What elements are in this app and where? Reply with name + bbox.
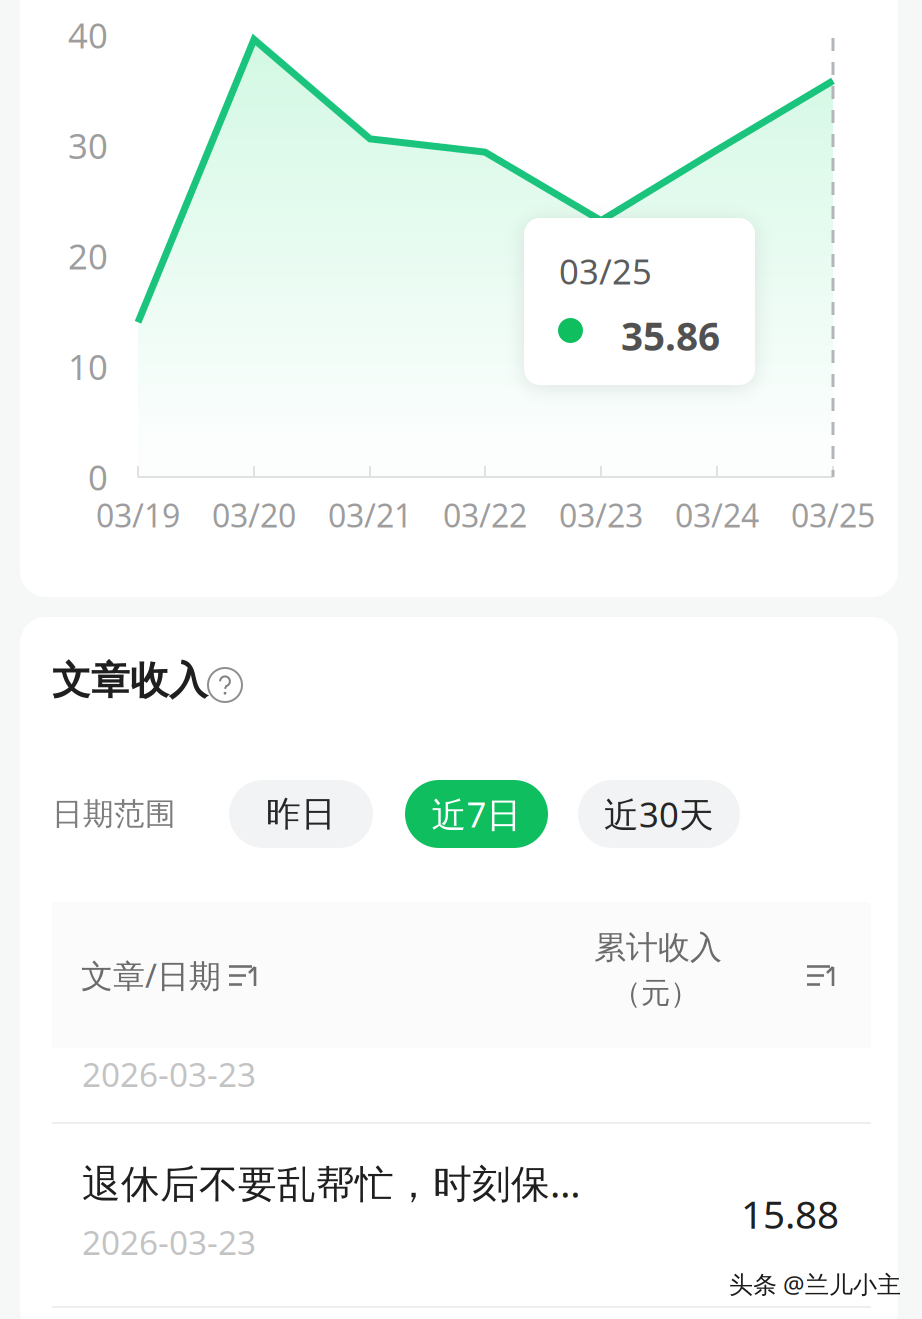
staticText: 退休后不要乱帮忙，时刻保…	[82, 1157, 581, 1208]
staticText: 03/20	[212, 494, 296, 536]
staticText: 近7日	[431, 791, 521, 837]
staticText: 03/22	[443, 494, 527, 536]
staticText: 30	[68, 122, 108, 168]
button[interactable]: 近30天	[578, 780, 740, 848]
staticText: 03/23	[559, 494, 643, 536]
staticText: 文章/日期	[81, 954, 221, 996]
staticText: 15.88	[741, 1188, 839, 1239]
button[interactable]: 按文章/日期排序	[220, 956, 268, 996]
staticText: 03/21	[328, 494, 412, 536]
staticText: 昨日	[266, 793, 336, 835]
staticText: 累计收入	[594, 928, 722, 967]
staticText: 03/19	[96, 494, 180, 536]
staticText: 03/25	[559, 248, 652, 294]
staticText: 03/24	[675, 494, 759, 536]
staticText: 日期范围	[52, 795, 176, 833]
staticText: 2026-03-23	[82, 1220, 256, 1264]
staticText: 文章收入	[52, 657, 208, 704]
staticText: 40	[68, 12, 108, 58]
staticText: 10	[68, 343, 108, 389]
staticText: 2026-03-23	[82, 1052, 256, 1096]
staticText: （元）	[612, 975, 699, 1011]
button[interactable]: 近7日	[405, 780, 548, 848]
button[interactable]: 退休后不要乱帮忙，时刻保…	[52, 1128, 871, 1308]
button[interactable]: 昨日	[229, 780, 373, 848]
staticText: 35.86	[621, 310, 720, 361]
staticText: 20	[68, 233, 108, 279]
button[interactable]: 关于文章收入	[208, 668, 242, 702]
staticText: 头条 @兰儿小主	[729, 1268, 901, 1300]
staticText: 近30天	[604, 791, 714, 837]
staticText: 03/25	[791, 494, 875, 536]
button[interactable]: 按累计收入排序	[798, 956, 846, 996]
staticText: 0	[88, 454, 108, 500]
